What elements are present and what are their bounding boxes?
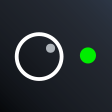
button[interactable]: Shutter bbox=[15, 32, 63, 81]
button[interactable]: Recording indicator bbox=[80, 47, 96, 63]
